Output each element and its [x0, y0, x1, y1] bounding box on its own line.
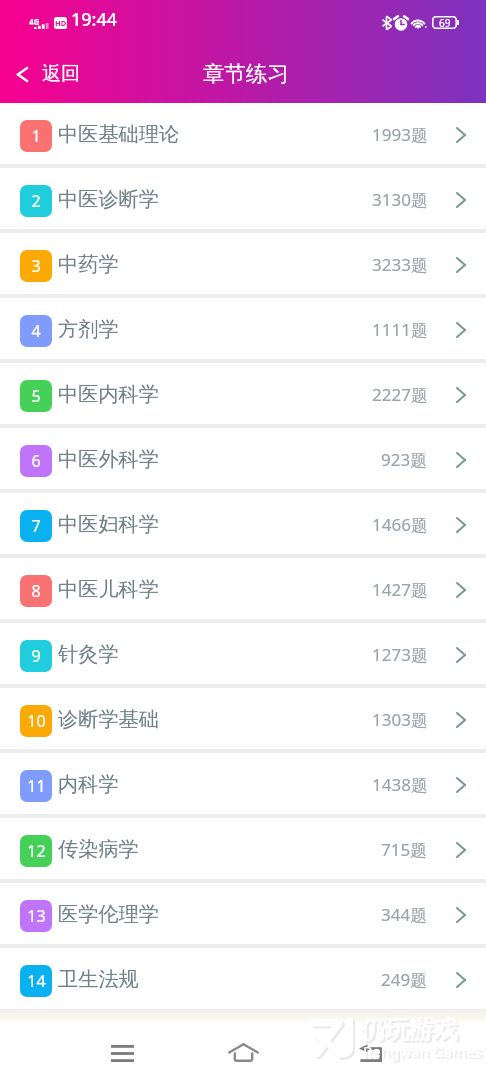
- staticText: Rengwan Games: [363, 1041, 482, 1061]
- button[interactable]: 11: [0, 753, 486, 814]
- staticText: 7: [31, 515, 41, 537]
- staticText: 9: [31, 645, 41, 667]
- button[interactable]: 8: [0, 558, 486, 619]
- staticText: 6: [31, 450, 41, 472]
- staticText: 方剂学: [58, 317, 119, 342]
- staticText: 3130题: [372, 188, 428, 211]
- button[interactable]: 14: [0, 948, 486, 1009]
- staticText: 中医外科学: [58, 447, 159, 472]
- staticText: 针灸学: [58, 642, 119, 667]
- button[interactable]: 9: [0, 623, 486, 684]
- staticText: 内科学: [58, 772, 119, 797]
- staticText: 344题: [381, 903, 428, 926]
- staticText: 2227题: [372, 383, 428, 406]
- staticText: 1993题: [372, 123, 428, 146]
- staticText: 12: [27, 840, 46, 862]
- staticText: 仍玩游戏: [362, 1016, 460, 1047]
- staticText: 诊断学基础: [58, 707, 159, 732]
- staticText: 5: [31, 385, 41, 407]
- staticText: 3233题: [372, 253, 428, 276]
- staticText: 8: [31, 580, 41, 602]
- staticText: 19:44: [71, 7, 118, 32]
- staticText: 中医诊断学: [58, 187, 159, 212]
- staticText: 1438题: [372, 773, 428, 796]
- staticText: 中药学: [58, 252, 119, 277]
- staticText: 69: [439, 16, 451, 29]
- button[interactable]: 10: [0, 688, 486, 749]
- staticText: 249题: [381, 968, 428, 991]
- staticText: 中医儿科学: [58, 577, 159, 602]
- staticText: 3: [31, 255, 41, 277]
- staticText: HD: [55, 18, 67, 28]
- staticText: 医学伦理学: [58, 902, 159, 927]
- button[interactable]: 返回: [0, 52, 98, 96]
- button[interactable]: 13: [0, 883, 486, 944]
- staticText: 1466题: [372, 513, 428, 536]
- button[interactable]: Back: [338, 1026, 402, 1080]
- staticText: 1111题: [372, 318, 428, 341]
- staticText: 715题: [381, 838, 428, 861]
- staticText: 中医妇科学: [58, 512, 159, 537]
- staticText: 1273题: [372, 643, 428, 666]
- staticText: Rengwan Games: [365, 1043, 484, 1063]
- button[interactable]: 2: [0, 168, 486, 229]
- staticText: 中医基础理论: [58, 122, 180, 147]
- staticText: 923题: [381, 448, 428, 471]
- button[interactable]: Recent apps: [90, 1026, 154, 1080]
- button[interactable]: 4: [0, 298, 486, 359]
- staticText: 返回: [42, 62, 80, 86]
- staticText: 14: [27, 970, 46, 992]
- staticText: 13: [27, 905, 46, 927]
- button[interactable]: 6: [0, 428, 486, 489]
- staticText: 4: [31, 320, 41, 342]
- staticText: 传染病学: [58, 837, 139, 862]
- staticText: 2: [31, 190, 41, 212]
- staticText: 1303题: [372, 708, 428, 731]
- staticText: 仍玩游戏: [360, 1014, 458, 1045]
- staticText: 章节练习: [203, 60, 289, 87]
- staticText: 4G: [29, 16, 40, 27]
- button[interactable]: 1: [0, 103, 486, 164]
- button[interactable]: Home: [211, 1026, 275, 1080]
- staticText: 卫生法规: [58, 967, 139, 992]
- staticText: 1427题: [372, 578, 428, 601]
- button[interactable]: 7: [0, 493, 486, 554]
- button[interactable]: 5: [0, 363, 486, 424]
- staticText: 10: [27, 710, 46, 732]
- staticText: 1: [31, 125, 41, 147]
- staticText: 中医内科学: [58, 382, 159, 407]
- button[interactable]: 12: [0, 818, 486, 879]
- button[interactable]: 3: [0, 233, 486, 294]
- staticText: 11: [27, 775, 46, 797]
